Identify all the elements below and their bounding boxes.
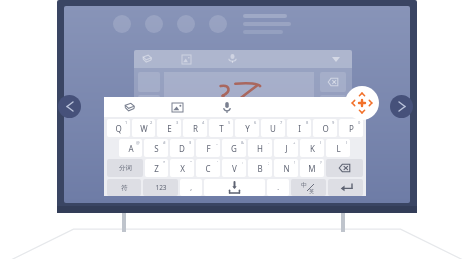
button[interactable]: A [119, 139, 142, 157]
button[interactable]: R [183, 119, 207, 137]
staticText: ; [268, 160, 270, 165]
button[interactable]: U [261, 119, 285, 137]
button[interactable]: E [157, 119, 181, 137]
staticText: 英 [309, 188, 314, 194]
staticText: I [298, 123, 301, 134]
staticText: X [180, 163, 185, 174]
staticText: 中 [301, 181, 307, 189]
staticText: T [219, 123, 224, 134]
staticText: ) [346, 140, 348, 145]
staticText: S [154, 143, 159, 154]
staticText: 7 [280, 120, 283, 125]
staticText: 2 [150, 120, 153, 125]
staticText: & [241, 140, 244, 145]
staticText: 8 [306, 120, 309, 125]
staticText: * [163, 160, 166, 165]
staticText: C [205, 163, 211, 174]
staticText: E [167, 123, 172, 134]
button[interactable]: G [222, 139, 246, 157]
button[interactable]: Handwriting [116, 97, 142, 117]
button[interactable]: L [326, 139, 350, 157]
staticText: 1 [125, 120, 128, 125]
staticText: B [257, 163, 263, 174]
button[interactable]: X [170, 159, 194, 177]
button[interactable]: V [222, 159, 246, 177]
button[interactable]: Q [107, 119, 130, 137]
button[interactable]: D [170, 139, 194, 157]
button[interactable]: S [144, 139, 168, 157]
staticText: R [193, 123, 198, 134]
staticText: " [190, 160, 192, 165]
staticText: U [270, 123, 276, 134]
button[interactable]: I [287, 119, 311, 137]
staticText: W [140, 123, 148, 134]
staticText: P [349, 123, 354, 134]
button[interactable]: Y [235, 119, 259, 137]
button[interactable]: P [339, 119, 363, 137]
button[interactable]: Previous [58, 95, 81, 118]
staticText: : [242, 160, 244, 165]
button[interactable]: Space [204, 179, 265, 196]
button[interactable]: W [132, 119, 155, 137]
staticText: $ [189, 140, 192, 145]
staticText: N [283, 163, 290, 174]
staticText: 分词 [119, 164, 132, 172]
staticText: 符 [121, 184, 128, 192]
staticText: K [310, 143, 315, 154]
button[interactable]: T [209, 119, 233, 137]
button[interactable]: Enter [328, 179, 363, 196]
button[interactable]: Chinese English toggle [291, 179, 326, 196]
staticText: 5 [228, 120, 231, 125]
staticText: - [268, 140, 270, 145]
button[interactable]: , [180, 179, 202, 196]
staticText: 4 [202, 120, 205, 125]
button[interactable]: . [267, 179, 289, 196]
button[interactable]: H [248, 139, 272, 157]
staticText: J [285, 143, 288, 154]
button[interactable]: B [248, 159, 272, 177]
staticText: . [277, 183, 279, 192]
button[interactable]: Sticker [164, 97, 190, 117]
staticText: , [190, 183, 192, 192]
staticText: G [231, 143, 237, 154]
staticText: 0 [358, 120, 361, 125]
staticText: 123 [155, 183, 167, 192]
button[interactable]: K [300, 139, 324, 157]
button[interactable]: Z [145, 159, 168, 177]
staticText: ? [320, 160, 322, 165]
staticText: 6 [254, 120, 257, 125]
button[interactable]: 分词 [107, 159, 143, 177]
staticText: M [308, 163, 316, 174]
staticText: Y [245, 123, 250, 134]
staticText: + [293, 140, 296, 145]
staticText: H [257, 143, 263, 154]
button[interactable]: Voice input [214, 97, 240, 117]
staticText: V [232, 163, 237, 174]
staticText: ( [320, 140, 322, 145]
button[interactable]: 123 [143, 179, 178, 196]
staticText: F [206, 143, 211, 154]
staticText: O [322, 123, 329, 134]
staticText: A [128, 143, 134, 154]
button[interactable]: J [274, 139, 298, 157]
button[interactable]: N [274, 159, 298, 177]
button[interactable]: C [196, 159, 220, 177]
staticText: L [336, 143, 341, 154]
staticText: ! [294, 160, 296, 165]
button[interactable]: O [313, 119, 337, 137]
staticText: @ [136, 140, 140, 145]
staticText: 9 [332, 120, 335, 125]
button[interactable]: M [300, 159, 324, 177]
staticText: Z [154, 163, 159, 174]
button[interactable]: F [196, 139, 220, 157]
staticText: D [179, 143, 185, 154]
button[interactable]: Move keyboard [345, 86, 379, 120]
button[interactable]: Next [390, 95, 413, 118]
staticText: 3 [176, 120, 179, 125]
staticText: Q [115, 123, 122, 134]
button[interactable]: 符 [107, 179, 141, 196]
staticText: # [163, 140, 166, 145]
staticText: _ [216, 140, 218, 145]
staticText: ' [217, 160, 218, 165]
button[interactable]: Backspace [326, 159, 363, 177]
